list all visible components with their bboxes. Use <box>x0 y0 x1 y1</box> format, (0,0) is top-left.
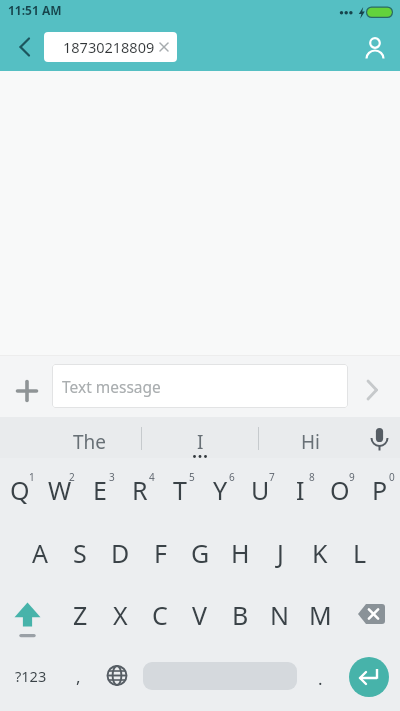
staticText: R <box>132 473 148 507</box>
staticText: V <box>192 598 208 632</box>
button[interactable]: R <box>120 461 160 519</box>
button[interactable]: F <box>140 524 180 582</box>
staticText: , <box>76 665 81 688</box>
staticText: C <box>152 598 168 632</box>
staticText: . <box>318 667 323 690</box>
staticText: F <box>154 536 167 570</box>
staticText: 2 <box>69 470 75 484</box>
staticText: A <box>32 536 48 570</box>
button[interactable]: N <box>260 586 300 644</box>
button[interactable]: K <box>300 524 340 582</box>
staticText: 7 <box>269 470 275 484</box>
staticText: P <box>372 473 388 507</box>
staticText: 6 <box>229 470 235 484</box>
button[interactable]: Z <box>60 586 100 644</box>
button[interactable]: J <box>260 524 300 582</box>
button[interactable]: L <box>340 524 380 582</box>
button[interactable]: X <box>100 586 140 644</box>
button[interactable]: T <box>160 461 200 519</box>
staticText: G <box>191 536 210 570</box>
staticText: 11:51 AM <box>8 2 62 18</box>
button[interactable] <box>358 376 386 404</box>
button[interactable] <box>342 582 400 646</box>
staticText: D <box>111 536 130 570</box>
staticText: I <box>197 429 204 455</box>
staticText: Y <box>213 473 228 507</box>
staticText: 8 <box>309 470 315 484</box>
staticText: B <box>232 598 249 632</box>
staticText: J <box>277 536 284 570</box>
staticText: Text message <box>62 376 161 397</box>
staticText: L <box>353 536 367 570</box>
button[interactable]: Hi <box>275 424 345 460</box>
button[interactable] <box>96 646 138 711</box>
button[interactable]: I <box>165 424 235 460</box>
button[interactable]: O <box>320 461 360 519</box>
button[interactable]: S <box>60 524 100 582</box>
staticText: N <box>270 598 290 632</box>
staticText: 1 <box>29 470 35 484</box>
button[interactable]: 18730218809 <box>44 32 177 62</box>
staticText: I <box>296 473 305 507</box>
staticText: M <box>309 598 332 632</box>
staticText: E <box>93 473 107 507</box>
button[interactable]: V <box>180 586 220 644</box>
button[interactable]: H <box>220 524 260 582</box>
button[interactable]: M <box>300 586 340 644</box>
button[interactable]: C <box>140 586 180 644</box>
button[interactable] <box>12 376 42 406</box>
staticText: 3 <box>109 470 115 484</box>
button[interactable]: . <box>300 646 340 711</box>
button[interactable]: U <box>240 461 280 519</box>
staticText: The <box>73 429 107 455</box>
staticText: X <box>113 598 128 632</box>
staticText: ?123 <box>15 666 47 686</box>
staticText: U <box>251 473 270 507</box>
button[interactable]: Text message <box>52 364 348 408</box>
staticText: 18730218809 <box>63 37 155 57</box>
staticText: 4 <box>149 470 155 484</box>
staticText: S <box>73 536 87 570</box>
button[interactable]: G <box>180 524 220 582</box>
staticText: T <box>173 473 187 507</box>
button[interactable] <box>362 34 388 60</box>
button[interactable]: , <box>57 644 99 709</box>
button[interactable]: B <box>220 586 260 644</box>
button[interactable]: A <box>20 524 60 582</box>
button[interactable]: P <box>360 461 400 519</box>
staticText: H <box>231 536 250 570</box>
button[interactable]: I <box>280 461 320 519</box>
button[interactable] <box>366 423 393 455</box>
button[interactable] <box>0 582 58 646</box>
staticText: W <box>48 473 72 507</box>
button[interactable]: W <box>40 461 80 519</box>
staticText: Z <box>73 598 88 632</box>
staticText: 9 <box>349 470 355 484</box>
button[interactable]: ?123 <box>2 643 59 708</box>
button[interactable]: D <box>100 524 140 582</box>
button[interactable]: The <box>55 424 125 460</box>
button[interactable] <box>349 657 389 697</box>
staticText: K <box>312 536 328 570</box>
staticText: Q <box>10 473 30 507</box>
button[interactable]: Y <box>200 461 240 519</box>
staticText: 0 <box>389 470 395 484</box>
staticText: O <box>330 473 350 507</box>
staticText: Hi <box>301 429 320 455</box>
button[interactable]: E <box>80 461 120 519</box>
staticText: 5 <box>189 470 195 484</box>
button[interactable]: Q <box>0 461 40 519</box>
button[interactable] <box>8 33 38 61</box>
